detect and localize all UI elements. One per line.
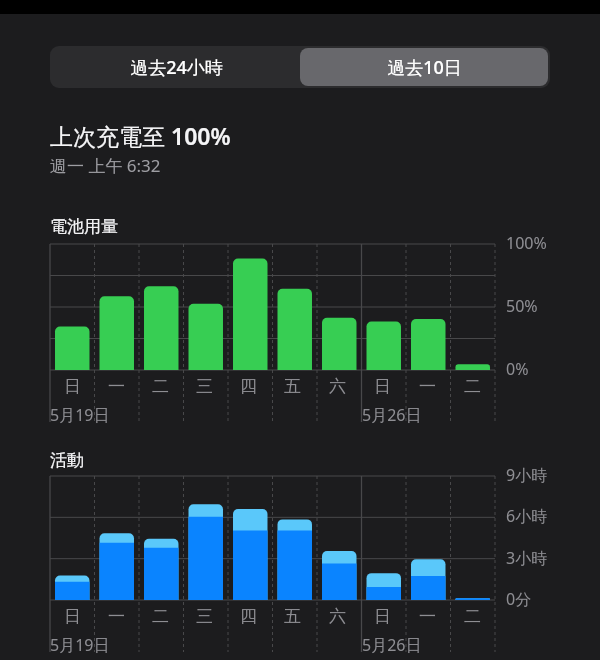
staticText: 五 — [284, 606, 301, 627]
staticText: 日 — [374, 606, 391, 627]
staticText: 5月26日 — [362, 634, 422, 656]
staticText: 五 — [284, 376, 301, 397]
staticText: 三 — [196, 606, 213, 627]
staticText: 50% — [506, 295, 538, 317]
staticText: 二 — [152, 606, 169, 627]
staticText: 二 — [464, 376, 481, 397]
staticText: 6小時 — [506, 505, 548, 527]
staticText: 一 — [419, 376, 436, 397]
staticText: 三 — [196, 376, 213, 397]
staticText: 一 — [108, 606, 125, 627]
staticText: 六 — [329, 606, 346, 627]
staticText: 週一 上午 6:32 — [50, 154, 161, 177]
button[interactable]: 過去10日 — [300, 48, 548, 86]
staticText: 過去10日 — [387, 55, 462, 80]
staticText: 9小時 — [506, 464, 548, 486]
staticText: 上次充電至 100% — [50, 120, 231, 151]
staticText: 二 — [464, 606, 481, 627]
staticText: 日 — [374, 376, 391, 397]
staticText: 日 — [64, 606, 81, 627]
staticText: 四 — [240, 376, 257, 397]
staticText: 六 — [329, 376, 346, 397]
staticText: 過去24小時 — [130, 55, 223, 80]
staticText: 四 — [240, 606, 257, 627]
staticText: 100% — [506, 232, 547, 254]
button[interactable]: 過去24小時 — [52, 48, 300, 86]
staticText: 5月26日 — [362, 404, 422, 426]
staticText: 5月19日 — [50, 634, 110, 656]
staticText: 0分 — [506, 588, 532, 610]
staticText: 一 — [108, 376, 125, 397]
staticText: 電池用量 — [50, 216, 118, 237]
staticText: 3小時 — [506, 547, 548, 569]
staticText: 0% — [506, 358, 529, 380]
staticText: 二 — [152, 376, 169, 397]
staticText: 日 — [64, 376, 81, 397]
staticText: 活動 — [50, 450, 84, 471]
staticText: 5月19日 — [50, 404, 110, 426]
staticText: 一 — [419, 606, 436, 627]
